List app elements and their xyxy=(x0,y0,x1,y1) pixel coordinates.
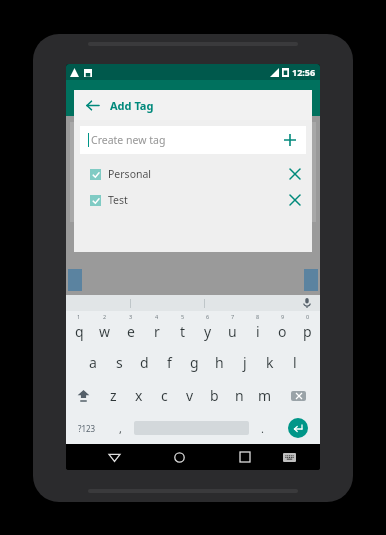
button[interactable]: g xyxy=(182,346,207,379)
staticText: 9 xyxy=(281,313,285,320)
button[interactable]: b xyxy=(202,379,227,412)
staticText: s xyxy=(116,353,123,372)
button[interactable]: v xyxy=(177,379,202,412)
button[interactable]: f xyxy=(157,346,182,379)
staticText: 0 xyxy=(306,313,310,320)
staticText: Add Tag xyxy=(110,98,154,113)
staticText: w xyxy=(99,322,111,341)
button[interactable]: 7 xyxy=(220,311,245,346)
staticText: 8 xyxy=(256,313,260,320)
button[interactable]: Home xyxy=(164,444,195,470)
button[interactable]: Recents xyxy=(229,444,260,470)
button[interactable]: Remove Test xyxy=(284,190,306,210)
staticText: Create new tag xyxy=(91,133,166,147)
button[interactable]: s xyxy=(106,346,132,379)
staticText: l xyxy=(293,353,297,372)
button[interactable]: l xyxy=(282,346,307,379)
staticText: b xyxy=(210,386,219,405)
staticText: f xyxy=(167,353,172,372)
button[interactable]: 0 xyxy=(295,311,320,346)
button[interactable]: 2 xyxy=(92,311,118,346)
button[interactable]: Create new tag xyxy=(80,126,306,154)
staticText: d xyxy=(140,353,149,372)
staticText: e xyxy=(127,322,135,341)
staticText: 12:56 xyxy=(292,66,316,78)
staticText: g xyxy=(190,353,199,372)
button[interactable]: 6 xyxy=(195,311,220,346)
button[interactable]: Test xyxy=(74,190,312,210)
button[interactable]: Enter xyxy=(276,412,320,444)
staticText: y xyxy=(204,322,212,341)
button[interactable]: c xyxy=(152,379,177,412)
button[interactable]: ?123 xyxy=(66,412,107,444)
button[interactable]: , xyxy=(107,412,134,444)
button[interactable]: Back xyxy=(99,444,130,470)
staticText: Personal xyxy=(108,167,152,181)
button[interactable]: d xyxy=(132,346,157,379)
staticText: m xyxy=(258,386,272,405)
staticText: i xyxy=(256,322,260,341)
button[interactable]: k xyxy=(257,346,282,379)
button[interactable]: Shift xyxy=(66,379,100,412)
button[interactable]: Delete xyxy=(277,379,320,412)
staticText: u xyxy=(228,322,237,341)
button[interactable]: 8 xyxy=(245,311,270,346)
staticText: o xyxy=(278,322,287,341)
button[interactable]: Hide keyboard xyxy=(274,444,305,470)
button[interactable]: x xyxy=(126,379,152,412)
button[interactable]: j xyxy=(232,346,257,379)
staticText: n xyxy=(235,386,244,405)
button[interactable]: 4 xyxy=(144,311,170,346)
staticText: a xyxy=(89,353,97,372)
button[interactable]: Personal xyxy=(74,164,312,184)
button[interactable]: 9 xyxy=(270,311,295,346)
staticText: . xyxy=(261,421,264,436)
button[interactable]: Voice input xyxy=(300,296,314,310)
button[interactable]: z xyxy=(100,379,126,412)
button[interactable]: Back xyxy=(74,90,312,120)
staticText: r xyxy=(154,322,160,341)
staticText: 5 xyxy=(181,313,185,320)
button[interactable]: 5 xyxy=(170,311,195,346)
button[interactable]: a xyxy=(80,346,106,379)
staticText: p xyxy=(303,322,312,341)
staticText: 1 xyxy=(77,313,81,320)
staticText: 7 xyxy=(231,313,235,320)
button[interactable]: Remove Personal xyxy=(284,164,306,184)
staticText: j xyxy=(243,353,247,372)
staticText: x xyxy=(135,386,143,405)
button[interactable]: 1 xyxy=(66,311,92,346)
button[interactable]: h xyxy=(207,346,232,379)
staticText: 6 xyxy=(206,313,210,320)
staticText: 3 xyxy=(129,313,133,320)
staticText: c xyxy=(161,386,168,405)
button[interactable]: n xyxy=(227,379,252,412)
button[interactable]: 3 xyxy=(118,311,144,346)
staticText: , xyxy=(119,421,122,436)
staticText: t xyxy=(180,322,186,341)
button[interactable]: m xyxy=(252,379,277,412)
staticText: 2 xyxy=(103,313,107,320)
staticText: 4 xyxy=(155,313,159,320)
staticText: z xyxy=(110,386,117,405)
button[interactable]: Add tag xyxy=(278,128,302,152)
staticText: Test xyxy=(108,193,128,207)
button[interactable]: Back xyxy=(82,95,102,115)
staticText: v xyxy=(186,386,194,405)
staticText: ?123 xyxy=(78,423,96,434)
button[interactable]: . xyxy=(249,412,276,444)
staticText: q xyxy=(75,322,84,341)
staticText: k xyxy=(266,353,274,372)
staticText: h xyxy=(215,353,224,372)
